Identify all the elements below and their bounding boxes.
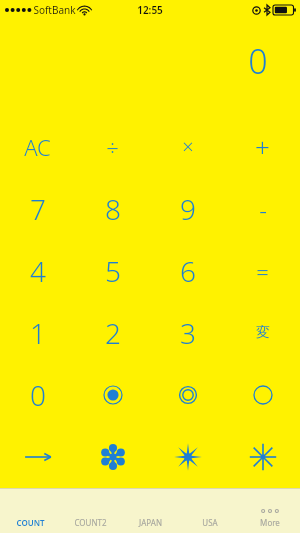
button[interactable]: COUNT xyxy=(0,489,60,533)
button[interactable]: 9 xyxy=(150,178,225,240)
button[interactable]: × xyxy=(150,115,225,178)
button[interactable]: Empty circle xyxy=(225,364,300,426)
button[interactable]: = xyxy=(225,240,300,302)
staticText: ÷ xyxy=(106,132,119,162)
button[interactable]: More xyxy=(240,489,300,533)
staticText: 6 xyxy=(180,252,196,290)
staticText: 9 xyxy=(180,190,196,228)
staticText: 変 xyxy=(256,324,270,342)
button[interactable]: ÷ xyxy=(75,115,150,178)
staticText: AC xyxy=(24,132,51,162)
button[interactable]: + xyxy=(225,115,300,178)
staticText: 2 xyxy=(105,314,121,352)
staticText: 5 xyxy=(105,252,121,290)
button[interactable]: JAPAN xyxy=(120,489,180,533)
staticText: COUNT xyxy=(16,517,45,528)
staticText: 8 xyxy=(105,190,121,228)
staticText: = xyxy=(256,256,269,286)
button[interactable]: 8 xyxy=(75,178,150,240)
staticText: USA xyxy=(202,517,218,528)
button[interactable]: 1 xyxy=(0,302,75,364)
button[interactable]: 4 xyxy=(0,240,75,302)
button[interactable]: Double circle xyxy=(150,364,225,426)
staticText: 0 xyxy=(30,376,46,414)
button[interactable]: - xyxy=(225,178,300,240)
button[interactable]: AC xyxy=(0,115,75,178)
button[interactable]: 3 xyxy=(150,302,225,364)
staticText: COUNT2 xyxy=(74,517,107,528)
button[interactable]: 5 xyxy=(75,240,150,302)
staticText: 7 xyxy=(30,190,46,228)
button[interactable]: Arrow right xyxy=(0,426,75,488)
button[interactable]: 6 xyxy=(150,240,225,302)
staticText: 0 xyxy=(248,38,268,84)
button[interactable]: Flower xyxy=(75,426,150,488)
staticText: 12:55 xyxy=(137,3,163,17)
staticText: - xyxy=(259,193,267,226)
button[interactable]: 7 xyxy=(0,178,75,240)
button[interactable]: 0 xyxy=(0,364,75,426)
button[interactable]: Filled circle xyxy=(75,364,150,426)
staticText: 3 xyxy=(180,314,196,352)
staticText: SoftBank xyxy=(33,3,76,17)
button[interactable]: 変 xyxy=(225,302,300,364)
button[interactable]: 2 xyxy=(75,302,150,364)
staticText: × xyxy=(182,133,194,160)
button[interactable]: Thin star xyxy=(225,426,300,488)
button[interactable]: USA xyxy=(180,489,240,533)
staticText: 1 xyxy=(30,314,46,352)
staticText: + xyxy=(255,129,270,164)
staticText: More xyxy=(260,517,280,528)
button[interactable]: Bold star xyxy=(150,426,225,488)
staticText: 4 xyxy=(30,252,46,290)
staticText: JAPAN xyxy=(139,517,162,528)
button[interactable]: COUNT2 xyxy=(60,489,120,533)
